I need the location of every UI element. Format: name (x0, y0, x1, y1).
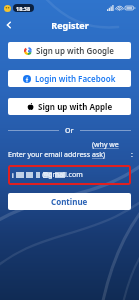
staticText: Or (65, 126, 74, 135)
staticText: Enter your email address (8, 150, 92, 160)
button[interactable]: Sign up with Google (8, 42, 131, 59)
staticText: Sign up with Apple (38, 101, 113, 112)
staticText: 18:38 (16, 5, 31, 12)
staticText: (why we ask) (92, 140, 131, 160)
button[interactable]: @gmail.com (8, 165, 131, 185)
button[interactable]: Back (0, 16, 18, 34)
staticText: Sign up with Google (36, 45, 115, 56)
button[interactable]: Login with Facebook (8, 70, 131, 87)
button[interactable]: (why we ask) (92, 140, 131, 160)
staticText: Continue (51, 196, 88, 207)
button[interactable]: Sign up with Apple (8, 98, 131, 115)
staticText: @gmail.com (42, 170, 83, 180)
staticText: Login with Facebook (35, 73, 116, 84)
staticText: Register (51, 19, 89, 31)
button[interactable]: Continue (8, 193, 131, 210)
